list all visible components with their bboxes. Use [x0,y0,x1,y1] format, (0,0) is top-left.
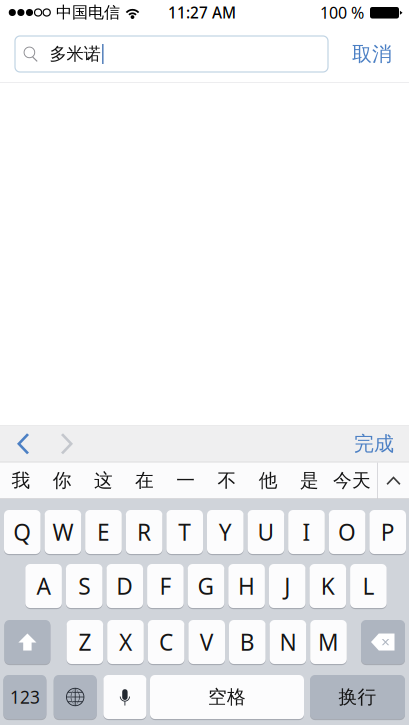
button[interactable]: C [148,620,184,664]
button[interactable]: D [106,564,143,608]
staticText: A [37,571,51,601]
button[interactable]: T [166,510,203,554]
button[interactable]: 他 [248,462,289,498]
button[interactable]: Switch keyboard [54,675,97,719]
button[interactable]: 完成 [351,426,397,462]
button[interactable]: Delete [361,620,405,664]
button[interactable]: Q [4,510,41,554]
button[interactable]: M [310,620,347,664]
staticText: 我 [11,469,30,492]
staticText: 今天 [333,469,371,492]
button[interactable]: Shift [4,620,50,664]
staticText: 在 [135,469,154,492]
staticText: 中国电信 [56,2,120,23]
button[interactable]: G [188,564,224,608]
button[interactable]: F [147,564,184,608]
staticText: U [257,517,274,547]
button[interactable]: More candidates [378,462,409,498]
staticText: C [159,627,173,657]
button[interactable]: Z [67,620,103,664]
button[interactable]: Previous field [2,426,44,462]
button[interactable]: 不 [206,462,247,498]
staticText: J [284,571,290,601]
staticText: 你 [53,469,72,492]
staticText: 是 [300,469,319,492]
button[interactable]: 取消 [349,36,395,72]
button[interactable]: 空格 [150,675,304,719]
button[interactable]: 这 [83,462,124,498]
button[interactable]: 我 [0,462,41,498]
staticText: D [116,571,133,601]
button[interactable]: A [25,564,62,608]
button[interactable]: H [228,564,265,608]
staticText: 一 [176,469,195,492]
button[interactable]: J [269,564,305,608]
button[interactable]: 是 [289,462,330,498]
staticText: M [318,627,339,657]
staticText: Y [219,517,232,547]
button[interactable]: N [270,620,306,664]
button[interactable]: I [288,510,325,554]
staticText: Z [78,627,91,657]
button[interactable]: E [85,510,122,554]
staticText: H [238,571,255,601]
button[interactable]: R [126,510,162,554]
staticText: 完成 [354,431,394,456]
button[interactable]: 123 [3,675,46,719]
button[interactable]: X [107,620,144,664]
staticText: K [321,571,335,601]
button[interactable]: 今天 [331,462,373,498]
staticText: 这 [94,469,113,492]
staticText: 空格 [208,685,246,709]
staticText: I [302,517,310,547]
button[interactable]: Dictate [103,675,146,719]
staticText: N [279,627,296,657]
button[interactable]: U [248,510,284,554]
button[interactable]: 一 [165,462,206,498]
staticText: W [52,517,73,547]
staticText: B [240,627,255,657]
button[interactable]: B [229,620,266,664]
button[interactable]: P [369,510,406,554]
staticText: 换行 [338,685,376,709]
button[interactable]: Y [207,510,244,554]
staticText: 他 [259,469,278,492]
button[interactable]: O [329,510,365,554]
button[interactable]: V [188,620,225,664]
button[interactable]: 换行 [310,675,405,719]
button[interactable]: W [45,510,81,554]
staticText: 100 % [320,2,364,23]
staticText: X [119,627,132,657]
button[interactable]: 在 [124,462,165,498]
staticText: T [178,517,191,547]
staticText: R [137,517,151,547]
staticText: 多米诺 [49,43,100,65]
staticText: 11:27 AM [168,2,236,23]
staticText: O [338,517,356,547]
staticText: 取消 [352,41,392,67]
staticText: L [362,571,374,601]
staticText: 123 [10,685,40,709]
staticText: P [381,517,395,547]
staticText: S [78,571,90,601]
staticText: Q [13,517,31,547]
button[interactable]: L [350,564,387,608]
button[interactable]: 多米诺 [15,36,328,72]
staticText: E [97,517,110,547]
staticText: F [159,571,171,601]
button[interactable]: S [66,564,102,608]
button[interactable]: 你 [42,462,83,498]
staticText: V [200,627,214,657]
button[interactable]: Next field [46,426,88,462]
staticText: 不 [217,469,236,492]
button[interactable]: K [309,564,346,608]
staticText: G [197,571,214,601]
